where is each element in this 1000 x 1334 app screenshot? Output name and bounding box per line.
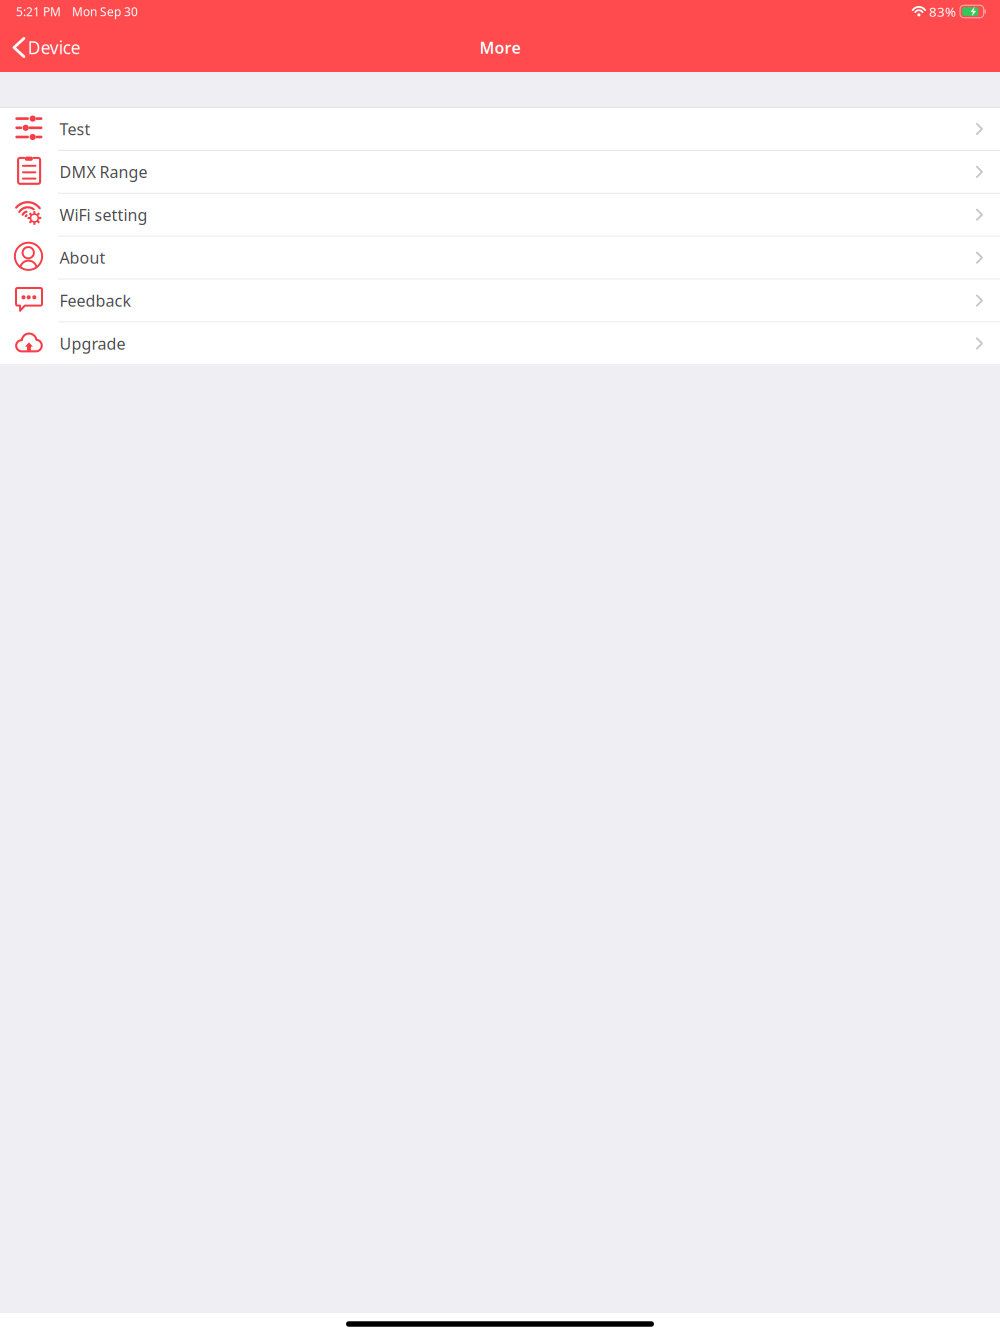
button[interactable]: DMX Range: [0, 151, 1000, 193]
staticText: DMX Range: [59, 161, 147, 182]
staticText: Upgrade: [59, 333, 125, 354]
staticText: 83%: [929, 3, 956, 20]
button[interactable]: Device: [0, 23, 91, 72]
staticText: WiFi setting: [59, 204, 147, 225]
button[interactable]: Test: [0, 108, 1000, 150]
staticText: Test: [59, 118, 90, 139]
staticText: More: [479, 37, 520, 58]
staticText: Feedback: [59, 290, 131, 311]
staticText: Mon Sep 30: [72, 3, 138, 19]
staticText: Device: [28, 36, 81, 59]
button[interactable]: WiFi setting: [0, 194, 1000, 236]
button[interactable]: About: [0, 237, 1000, 279]
staticText: About: [59, 247, 105, 268]
button[interactable]: Upgrade: [0, 322, 1000, 364]
button[interactable]: Feedback: [0, 280, 1000, 321]
staticText: 5:21 PM: [16, 3, 61, 19]
